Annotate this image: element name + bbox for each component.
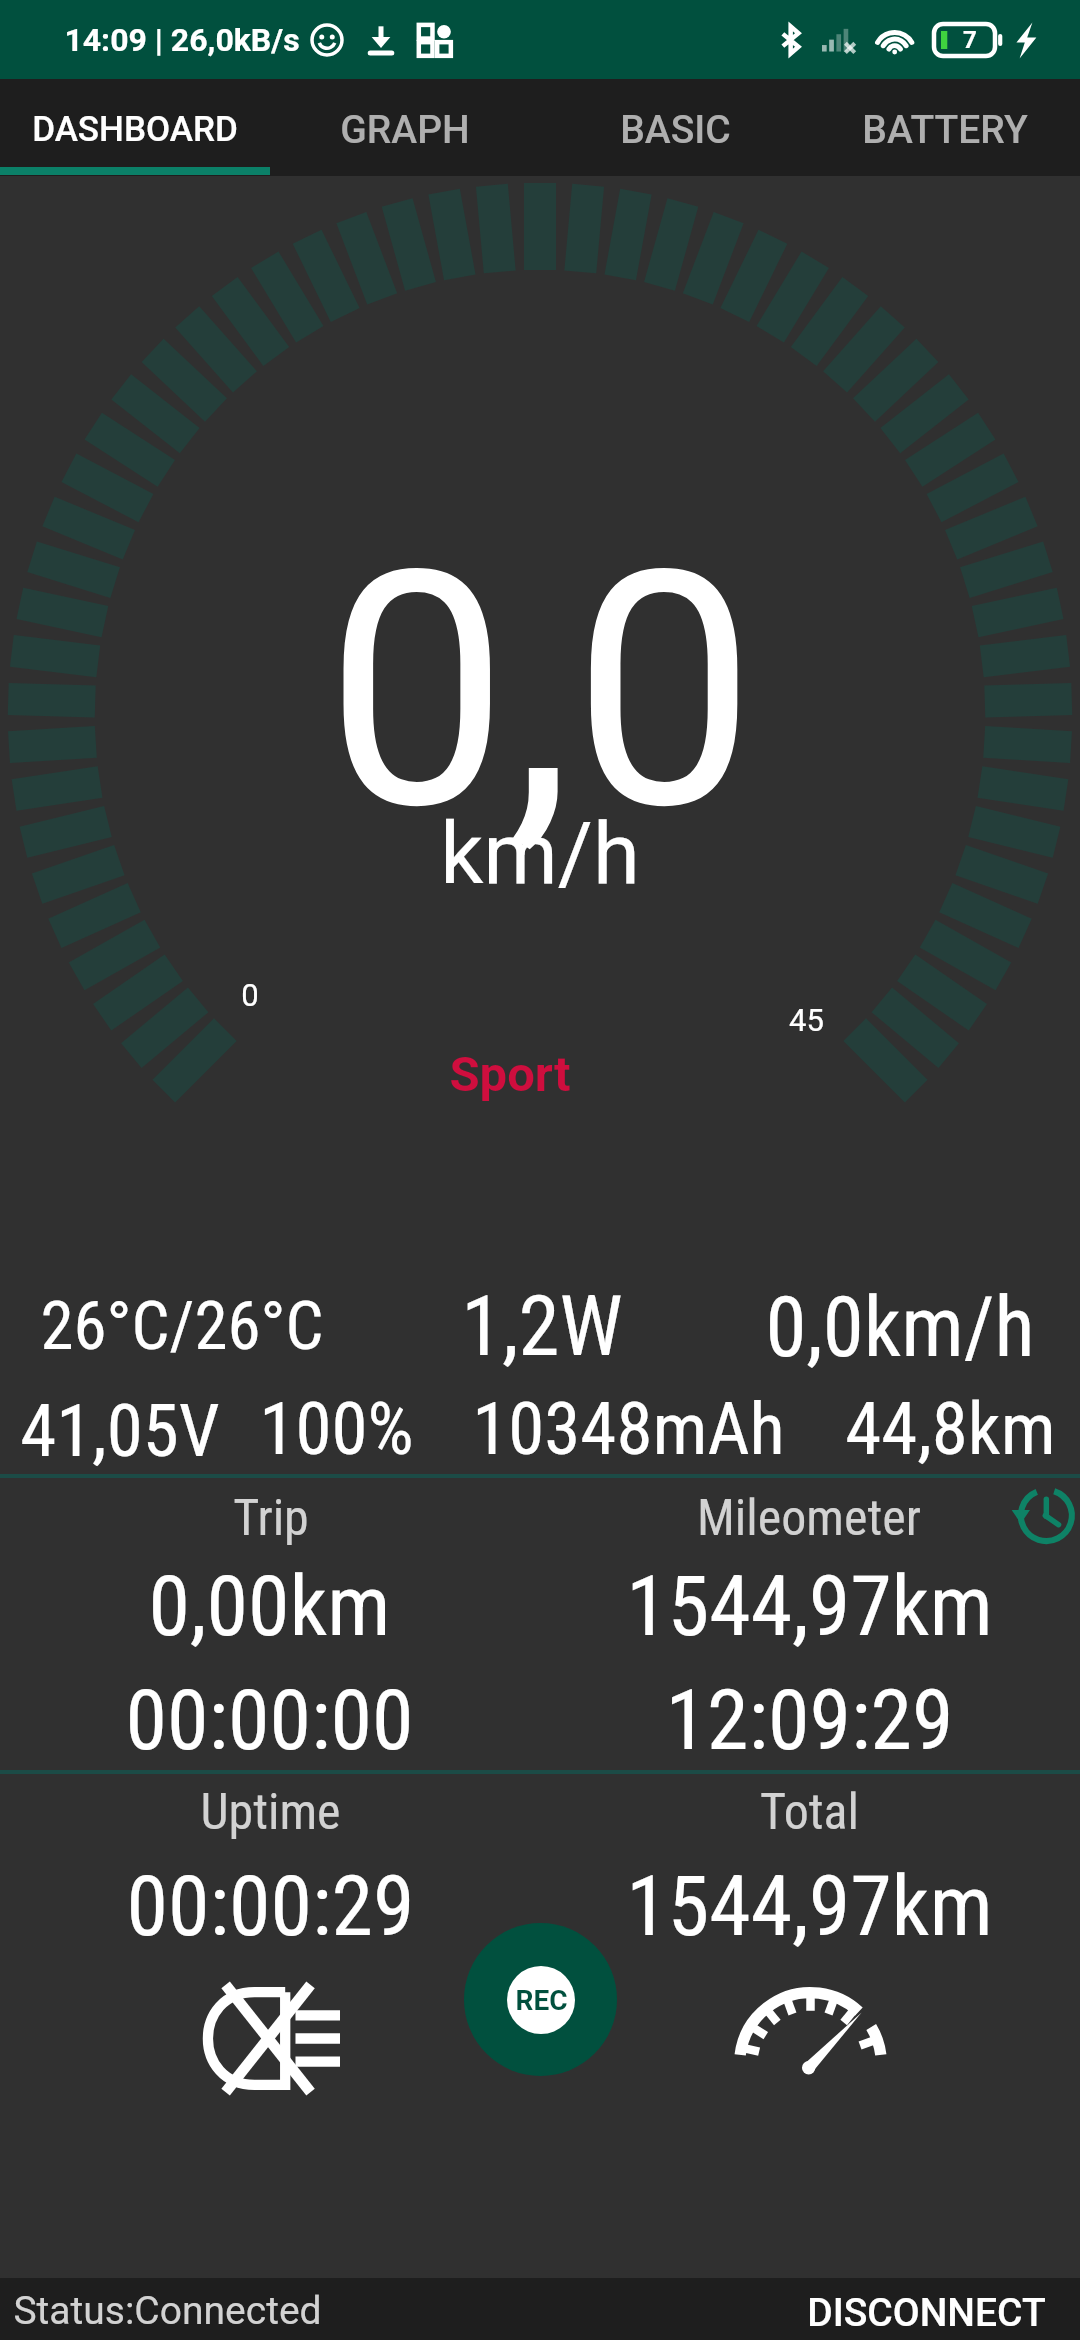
staticText: BASIC	[620, 107, 731, 153]
button[interactable]: DASHBOARD	[0, 79, 270, 176]
staticText: 0	[241, 977, 259, 1013]
staticText: 26°C/26°C	[40, 1287, 324, 1365]
staticText: 14:09 | 26,0kB/s	[64, 21, 300, 59]
staticText: 44,8km	[845, 1386, 1056, 1471]
staticText: 41,05V	[20, 1388, 220, 1473]
staticText: Trip	[233, 1489, 309, 1548]
staticText: Status:Connected	[13, 2288, 322, 2334]
staticText: 0,00km	[148, 1557, 391, 1655]
button[interactable]: BATTERY	[810, 79, 1080, 176]
staticText: 45	[789, 1002, 824, 1038]
staticText: Total	[760, 1783, 859, 1842]
staticText: 0,0km/h	[765, 1279, 1035, 1376]
button[interactable]: GRAPH	[270, 79, 540, 176]
button[interactable]: Speed	[734, 1987, 887, 2081]
staticText: 00:00:00	[125, 1671, 414, 1769]
staticText: 10348mAh	[472, 1386, 785, 1471]
button[interactable]: Headlight off	[203, 1987, 340, 2090]
button[interactable]: Record	[464, 1923, 617, 2076]
staticText: 1,2W	[461, 1278, 623, 1375]
button[interactable]: DISCONNECT	[803, 2282, 1050, 2340]
staticText: 1544,97km	[626, 1557, 993, 1655]
staticText: DISCONNECT	[807, 2290, 1046, 2332]
button[interactable]: BASIC	[540, 79, 810, 176]
staticText: Sport	[449, 1046, 571, 1103]
staticText: Uptime	[200, 1783, 341, 1842]
staticText: 00:00:29	[126, 1857, 415, 1955]
staticText: Mileometer	[697, 1489, 921, 1548]
staticText: REC	[515, 1984, 568, 2017]
staticText: DASHBOARD	[32, 109, 238, 150]
staticText: BATTERY	[862, 107, 1028, 153]
staticText: 100%	[259, 1386, 414, 1471]
staticText: 1544,97km	[626, 1857, 993, 1955]
staticText: 7	[963, 26, 977, 54]
staticText: 0,0	[325, 501, 756, 883]
staticText: km/h	[440, 804, 640, 904]
staticText: GRAPH	[340, 107, 470, 153]
staticText: 12:09:29	[665, 1671, 954, 1769]
button[interactable]: History	[1015, 1489, 1073, 1542]
